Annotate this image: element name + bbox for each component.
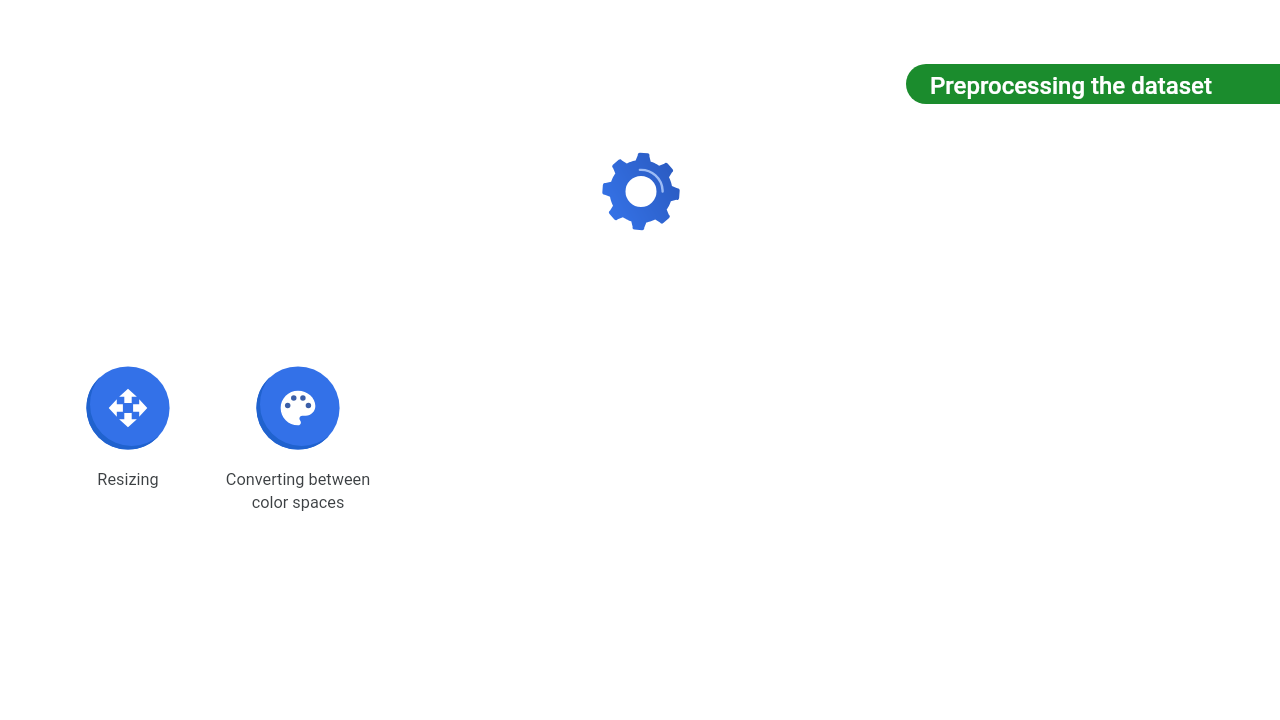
button[interactable]: Resizing <box>58 364 198 489</box>
staticText: Preprocessing the dataset <box>930 72 1212 100</box>
staticText: Converting between color spaces <box>213 470 383 512</box>
button[interactable]: Converting between color spaces <box>213 364 383 512</box>
staticText: Resizing <box>58 470 198 489</box>
button[interactable]: Preprocessing the dataset <box>906 64 1280 104</box>
button[interactable]: Preprocessing <box>601 151 681 231</box>
